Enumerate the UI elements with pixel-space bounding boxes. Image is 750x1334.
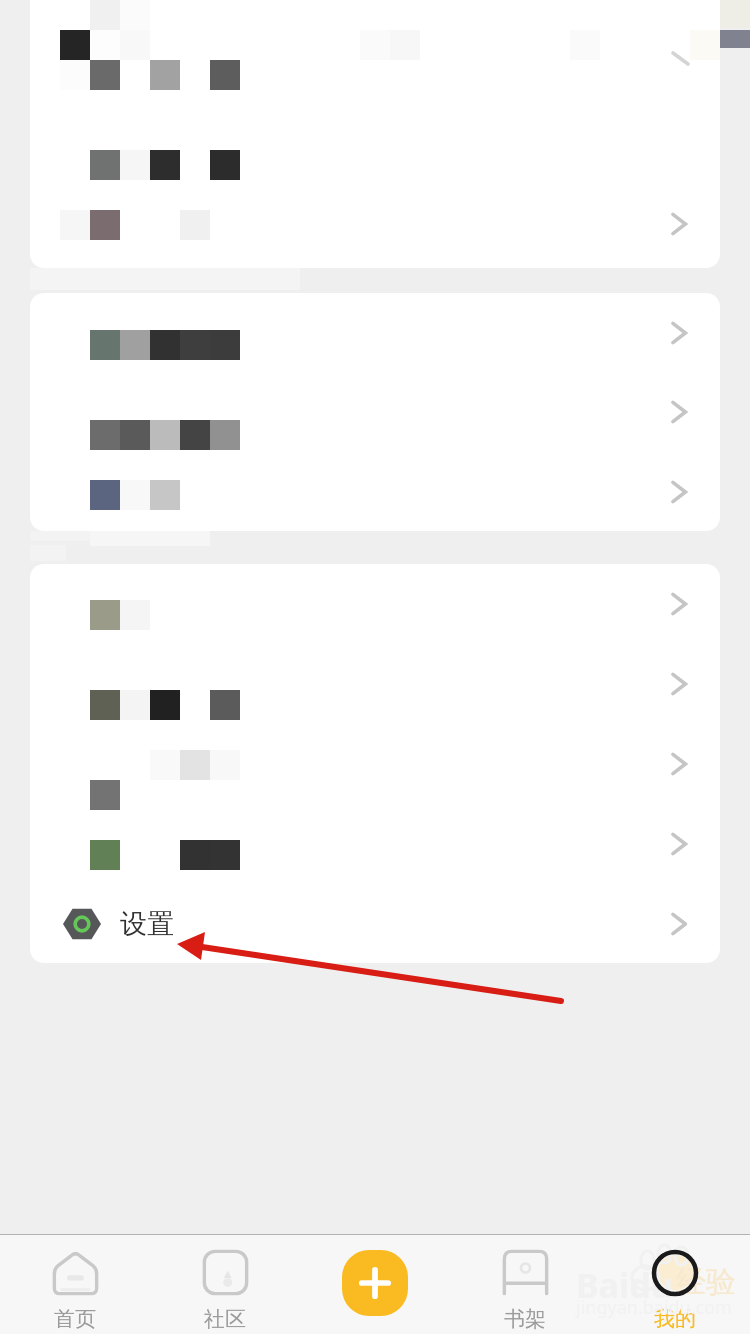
button[interactable]: 项目 [30, 564, 720, 644]
button[interactable]: 首页 [0, 1235, 150, 1334]
staticText: Baidu [576, 1262, 673, 1308]
button[interactable]: 项目 [30, 293, 720, 372]
button[interactable]: 我的 [600, 1235, 750, 1334]
staticText: jingyan.baidu.com [576, 1295, 732, 1320]
button[interactable]: 项目 [30, 184, 720, 264]
staticText: 经验 [676, 1263, 736, 1301]
button[interactable]: 项目 [30, 24, 720, 104]
button[interactable]: 项目 [30, 644, 720, 724]
staticText: 书架 [504, 1306, 546, 1332]
button[interactable]: 新建 [342, 1250, 408, 1316]
button[interactable]: 书架 [450, 1235, 600, 1334]
staticText: 首页 [54, 1306, 96, 1332]
staticText: 我的 [654, 1306, 696, 1332]
button[interactable]: 项目 [30, 372, 720, 452]
staticText: 设置 [120, 907, 174, 941]
button[interactable]: 项目 [30, 104, 720, 184]
button[interactable]: 社区 [150, 1235, 300, 1334]
staticText: 社区 [204, 1306, 246, 1332]
button[interactable]: 项目 [30, 804, 720, 884]
button[interactable]: 项目 [30, 724, 720, 804]
button[interactable]: 项目 [30, 0, 720, 24]
button[interactable]: 设置 [30, 884, 720, 963]
button[interactable]: 项目 [30, 452, 720, 531]
